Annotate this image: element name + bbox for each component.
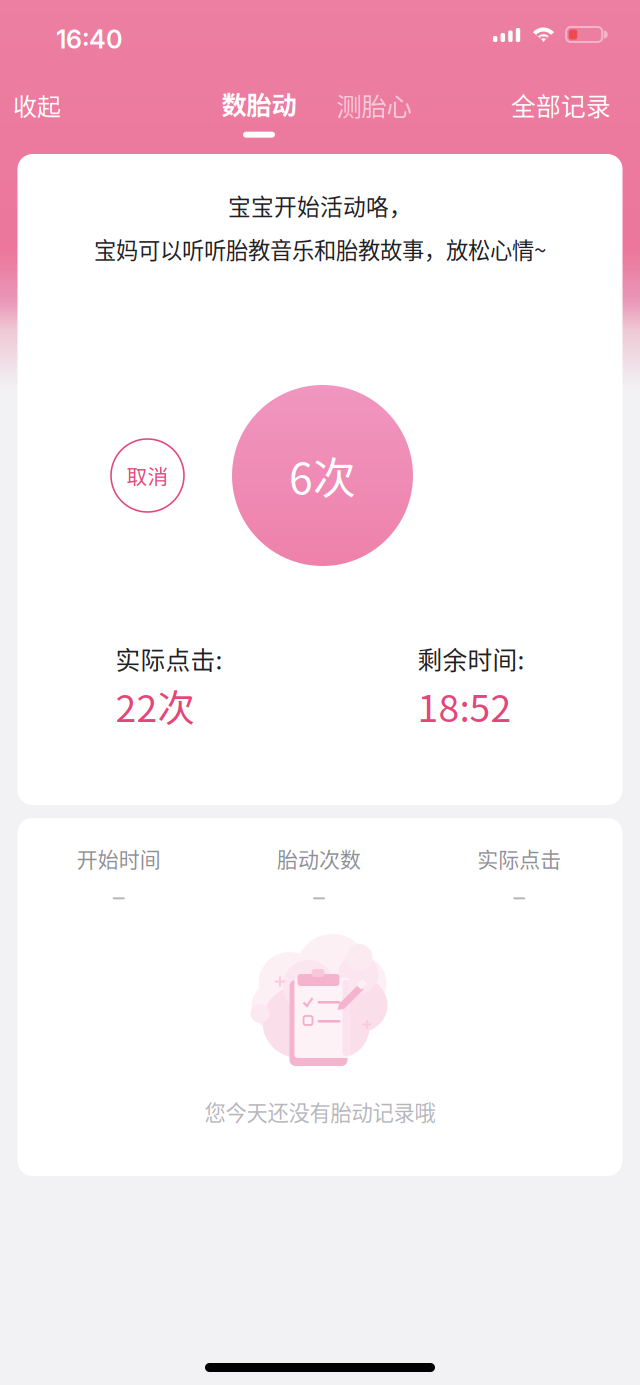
- button[interactable]: 数胎动: [210, 85, 308, 147]
- staticText: 测胎心: [336, 87, 411, 123]
- button[interactable]: 测胎心: [328, 74, 420, 136]
- staticText: 实际点击:: [115, 641, 222, 677]
- staticText: 22次: [115, 679, 194, 733]
- staticText: 剩余时间:: [417, 641, 524, 677]
- staticText: 开始时间: [77, 843, 161, 873]
- button[interactable]: 6次: [232, 385, 413, 566]
- button[interactable]: 取消: [111, 439, 184, 512]
- staticText: 18:52: [417, 679, 511, 733]
- staticText: 胎动次数: [277, 843, 361, 873]
- staticText: 收起: [13, 88, 61, 122]
- button[interactable]: 全部记录: [503, 74, 619, 136]
- button[interactable]: 收起: [0, 74, 76, 136]
- staticText: 数胎动: [221, 85, 296, 122]
- staticText: 您今天还没有胎动记录哦: [204, 1096, 435, 1127]
- staticText: 宝妈可以听听胎教音乐和胎教故事，放松心情~: [94, 233, 546, 265]
- staticText: 16:40: [56, 24, 123, 55]
- staticText: 全部记录: [511, 87, 611, 123]
- staticText: 实际点击: [477, 843, 561, 873]
- staticText: 取消: [126, 460, 168, 490]
- staticText: 6次: [289, 445, 356, 506]
- staticText: 宝宝开始活动咯，: [228, 189, 412, 222]
